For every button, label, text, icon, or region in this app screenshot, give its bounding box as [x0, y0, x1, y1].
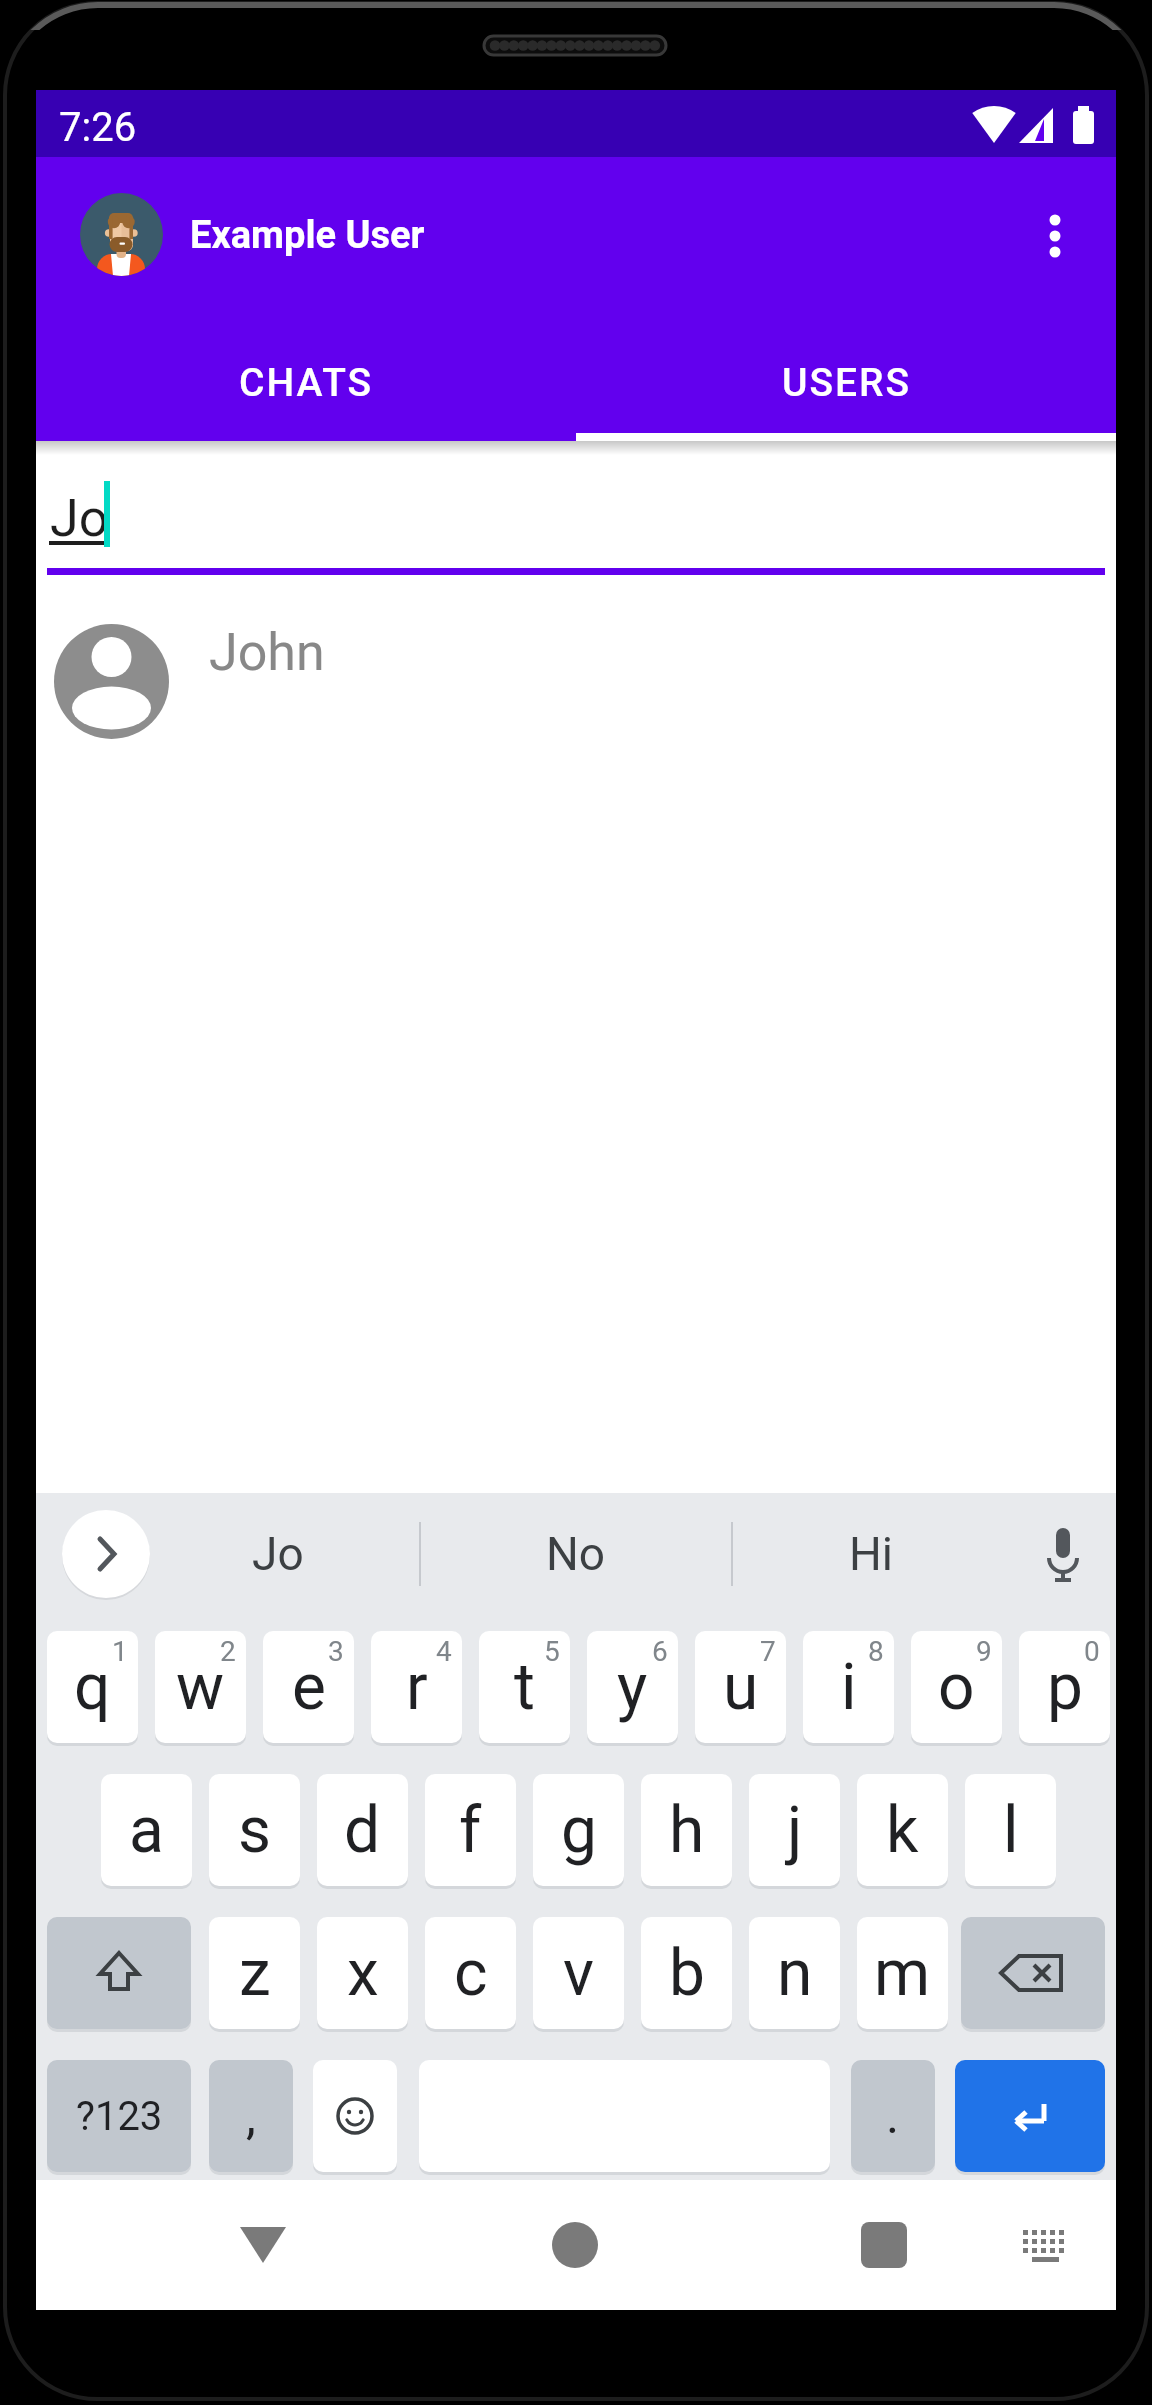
staticText: c [454, 1936, 488, 2011]
staticText: 7:26 [59, 104, 137, 151]
staticText: 2 [220, 1635, 236, 1668]
staticText: CHATS [239, 360, 374, 406]
button[interactable]: i [803, 1631, 894, 1747]
button[interactable]: . [851, 2060, 935, 2176]
button[interactable] [508, 2200, 642, 2290]
staticText: Hi [849, 1527, 894, 1581]
button[interactable] [1002, 2200, 1082, 2290]
button[interactable]: c [425, 1917, 516, 2033]
button[interactable] [817, 2200, 951, 2290]
button[interactable]: Jo [198, 1514, 358, 1594]
button[interactable]: No [496, 1514, 656, 1594]
button[interactable]: s [209, 1774, 300, 1890]
staticText: f [459, 1793, 482, 1868]
staticText: m [874, 1936, 931, 2011]
staticText: k [886, 1793, 919, 1868]
staticText: u [723, 1650, 759, 1725]
staticText: j [787, 1793, 803, 1868]
staticText: , [246, 2087, 256, 2146]
button[interactable]: r [371, 1631, 462, 1747]
button[interactable]: b [641, 1917, 732, 2033]
staticText: 7 [760, 1635, 776, 1668]
staticText: r [406, 1650, 428, 1725]
button[interactable]: l [965, 1774, 1056, 1890]
staticText: John [209, 622, 325, 678]
staticText: 5 [544, 1635, 560, 1668]
button[interactable] [62, 1510, 150, 1598]
button[interactable] [80, 193, 163, 276]
button[interactable] [313, 2060, 397, 2176]
staticText: No [546, 1527, 606, 1581]
button[interactable]: Hi [791, 1514, 951, 1594]
button[interactable]: CHATS [36, 324, 576, 441]
button[interactable]: q [47, 1631, 138, 1747]
staticText: Example User [190, 213, 425, 258]
button[interactable]: p [1019, 1631, 1110, 1747]
button[interactable]: g [533, 1774, 624, 1890]
staticText: 1 [112, 1635, 128, 1668]
button[interactable]: ?123 [47, 2060, 191, 2176]
button[interactable]: y [587, 1631, 678, 1747]
button[interactable]: v [533, 1917, 624, 2033]
staticText: 3 [328, 1635, 344, 1668]
staticText: s [238, 1793, 272, 1868]
button[interactable]: USERS [576, 324, 1116, 441]
button[interactable]: d [317, 1774, 408, 1890]
staticText: o [938, 1650, 975, 1725]
button[interactable]: o [911, 1631, 1002, 1747]
staticText: e [292, 1650, 326, 1725]
staticText: x [347, 1936, 379, 2011]
staticText: b [669, 1936, 705, 2011]
button[interactable] [196, 2200, 330, 2290]
staticText: 6 [652, 1635, 668, 1668]
staticText: z [239, 1936, 271, 2011]
button[interactable]: m [857, 1917, 948, 2033]
staticText: Jo [252, 1527, 304, 1581]
button[interactable] [1031, 1522, 1095, 1586]
staticText: d [344, 1793, 381, 1868]
staticText: a [129, 1793, 164, 1868]
button[interactable]: k [857, 1774, 948, 1890]
button[interactable] [419, 2060, 830, 2176]
staticText: h [669, 1793, 705, 1868]
staticText: w [176, 1650, 225, 1725]
button[interactable]: j [749, 1774, 840, 1890]
staticText: l [1003, 1793, 1019, 1868]
staticText: ?123 [76, 2093, 163, 2140]
button[interactable] [1025, 190, 1085, 282]
staticText: t [514, 1650, 535, 1725]
button[interactable] [36, 610, 1116, 750]
button[interactable]: u [695, 1631, 786, 1747]
button[interactable]: h [641, 1774, 732, 1890]
staticText: . [886, 2087, 900, 2146]
staticText: 0 [1084, 1635, 1100, 1668]
staticText: 8 [868, 1635, 884, 1668]
staticText: v [563, 1936, 594, 2011]
staticText: g [561, 1793, 597, 1868]
button[interactable]: e [263, 1631, 354, 1747]
staticText: p [1047, 1650, 1083, 1725]
staticText: y [617, 1650, 648, 1725]
staticText: 4 [436, 1635, 452, 1668]
button[interactable]: f [425, 1774, 516, 1890]
button[interactable]: t [479, 1631, 570, 1747]
staticText: q [74, 1650, 111, 1725]
button[interactable]: , [209, 2060, 293, 2176]
staticText: n [777, 1936, 813, 2011]
button[interactable] [47, 1917, 191, 2033]
button[interactable]: w [155, 1631, 246, 1747]
button[interactable]: z [209, 1917, 300, 2033]
button[interactable]: a [101, 1774, 192, 1890]
button[interactable]: x [317, 1917, 408, 2033]
button[interactable] [961, 1917, 1105, 2033]
button[interactable] [955, 2060, 1105, 2176]
staticText: i [841, 1650, 857, 1725]
button[interactable]: n [749, 1917, 840, 2033]
staticText: Jo [50, 488, 109, 546]
staticText: USERS [782, 360, 911, 406]
staticText: 9 [976, 1635, 992, 1668]
